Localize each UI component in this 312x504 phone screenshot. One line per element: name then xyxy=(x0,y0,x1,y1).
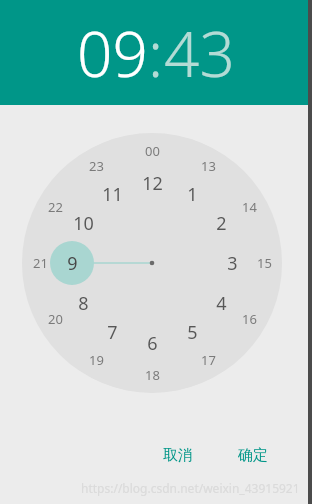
staticText: 确定 xyxy=(238,446,268,464)
button[interactable]: 10 xyxy=(66,206,100,240)
button[interactable]: 6 xyxy=(135,326,169,360)
staticText: 18 xyxy=(145,366,160,384)
button[interactable]: 取消 xyxy=(155,440,201,470)
staticText: 11 xyxy=(102,182,123,207)
staticText: 6 xyxy=(147,331,158,356)
button[interactable]: 11 xyxy=(95,177,129,211)
button[interactable]: 8 xyxy=(66,286,100,320)
button[interactable]: 19 xyxy=(79,343,113,377)
staticText: 21 xyxy=(33,254,48,272)
button[interactable]: 1 xyxy=(175,177,209,211)
staticText: https://blog.csdn.net/weixin_43915921 xyxy=(81,480,300,496)
staticText: 43 xyxy=(164,11,235,95)
staticText: 5 xyxy=(187,320,198,345)
staticText: 7 xyxy=(107,320,118,345)
button[interactable]: 20 xyxy=(38,302,72,336)
staticText: 19 xyxy=(89,351,104,369)
staticText: 取消 xyxy=(163,446,193,464)
staticText: 23 xyxy=(89,157,104,175)
button[interactable]: 17 xyxy=(191,343,225,377)
staticText: 20 xyxy=(48,310,63,328)
staticText: 09 xyxy=(77,11,148,95)
staticText: 4 xyxy=(216,291,227,316)
button[interactable]: 15 xyxy=(247,246,281,280)
button[interactable]: 09 xyxy=(77,11,148,95)
staticText: 14 xyxy=(242,198,257,216)
button[interactable]: 16 xyxy=(232,302,266,336)
staticText: 3 xyxy=(227,251,238,276)
button[interactable]: 9 xyxy=(55,246,89,280)
button[interactable]: 5 xyxy=(175,315,209,349)
button[interactable]: 21 xyxy=(23,246,57,280)
button[interactable]: 14 xyxy=(232,190,266,224)
button[interactable]: 确定 xyxy=(230,440,276,470)
button[interactable]: 18 xyxy=(135,358,169,392)
staticText: 00 xyxy=(145,142,160,160)
button[interactable]: 12 xyxy=(135,166,169,200)
button[interactable]: 4 xyxy=(204,286,238,320)
staticText: 1 xyxy=(187,182,198,207)
button[interactable]: 13 xyxy=(191,149,225,183)
staticText: : xyxy=(148,11,164,95)
staticText: 8 xyxy=(78,291,89,316)
button[interactable]: 7 xyxy=(95,315,129,349)
staticText: 2 xyxy=(216,211,227,236)
button[interactable]: 00 xyxy=(135,134,169,168)
button[interactable]: 23 xyxy=(79,149,113,183)
staticText: 13 xyxy=(201,157,216,175)
staticText: 22 xyxy=(48,198,63,216)
button[interactable]: 43 xyxy=(164,11,235,95)
staticText: 9 xyxy=(67,251,78,276)
staticText: 12 xyxy=(142,171,163,196)
button[interactable]: 3 xyxy=(215,246,249,280)
staticText: 17 xyxy=(201,351,216,369)
staticText: 15 xyxy=(257,254,272,272)
staticText: 10 xyxy=(73,211,94,236)
button[interactable]: 2 xyxy=(204,206,238,240)
button[interactable]: 22 xyxy=(38,190,72,224)
staticText: 16 xyxy=(242,310,257,328)
